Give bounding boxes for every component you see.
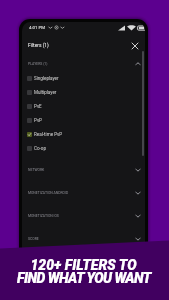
button[interactable]: Singleplayer [22,71,145,85]
staticText: Singleplayer [34,76,59,81]
staticText: PvE [34,104,42,109]
button[interactable]: Close filters [128,39,141,52]
button[interactable]: MONETIZATION IOS [22,204,145,227]
staticText: MONETIZATION IOS [28,214,59,218]
button[interactable]: Co-op [22,141,145,155]
staticText: FIND WHAT YOU WANT [17,270,151,286]
staticText: SCORE [28,237,39,241]
staticText: Filters (1) [28,42,49,48]
staticText: 4:01 PM [29,25,46,30]
button[interactable]: Multiplayer [22,85,145,99]
button[interactable]: NETWORK [22,159,145,181]
button[interactable]: MONETIZATION ANDROID [22,181,145,204]
button[interactable]: SCORE [22,227,145,250]
staticText: MONETIZATION ANDROID [28,191,69,195]
staticText: PvP [34,118,42,123]
staticText: NETWORK [28,168,45,172]
button[interactable]: PLAYERS (1) [22,57,145,71]
button[interactable]: PvP [22,113,145,127]
button[interactable]: Real-time PvP [22,127,145,141]
staticText: Multiplayer [34,90,57,95]
staticText: Real-time PvP [34,132,63,137]
staticText: PLAYERS (1) [28,62,48,66]
staticText: Co-op [34,146,46,151]
button[interactable]: PvE [22,99,145,113]
staticText: 120+ FILTERS TO [30,257,137,273]
